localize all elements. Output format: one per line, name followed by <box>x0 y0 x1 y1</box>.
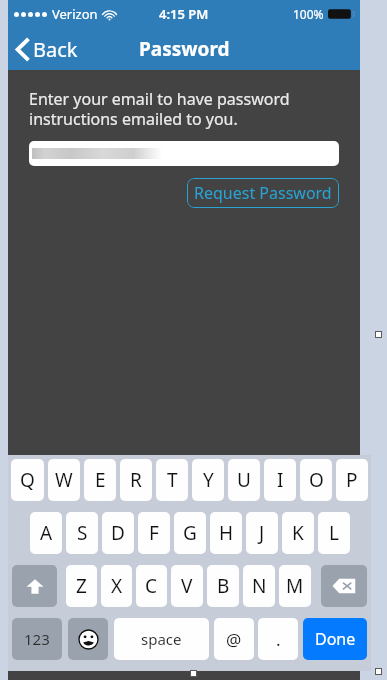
staticText: O <box>309 467 324 493</box>
button[interactable]: F <box>138 512 170 554</box>
staticText: Done <box>315 628 356 650</box>
button[interactable]: Q <box>11 459 44 501</box>
button[interactable]: G <box>174 512 206 554</box>
button[interactable]: U <box>228 459 260 501</box>
staticText: Enter your email to have password instru… <box>29 88 290 129</box>
staticText: W <box>55 467 73 493</box>
staticText: I <box>277 467 284 493</box>
button[interactable]: Y <box>192 459 224 501</box>
button[interactable]: H <box>210 512 242 554</box>
staticText: space <box>141 629 182 649</box>
staticText: N <box>252 573 267 599</box>
button[interactable] <box>29 141 339 166</box>
staticText: E <box>95 467 106 493</box>
button[interactable]: . <box>258 618 298 660</box>
staticText: 4:15 PM <box>159 5 209 23</box>
button[interactable]: J <box>246 512 278 554</box>
button[interactable]: @ <box>214 618 254 660</box>
staticText: Z <box>76 573 87 599</box>
button[interactable]: B <box>207 565 239 607</box>
staticText: C <box>145 573 158 599</box>
staticText: D <box>111 520 125 546</box>
staticText: P <box>346 467 358 493</box>
button[interactable]: Backspace <box>321 565 367 607</box>
button[interactable]: T <box>156 459 188 501</box>
staticText: Y <box>203 467 214 493</box>
button[interactable]: Shift <box>12 565 57 607</box>
button[interactable]: R <box>120 459 152 501</box>
staticText: @ <box>226 628 242 651</box>
button[interactable]: Done <box>303 618 367 660</box>
staticText: Q <box>20 467 35 493</box>
button[interactable]: L <box>318 512 350 554</box>
staticText: T <box>167 467 178 493</box>
button[interactable]: W <box>48 459 80 501</box>
button[interactable]: space <box>114 618 209 660</box>
staticText: 123 <box>24 629 50 649</box>
staticText: Password <box>139 36 230 62</box>
staticText: J <box>259 520 265 546</box>
staticText: 100% <box>293 6 324 22</box>
button[interactable]: Back <box>8 32 88 67</box>
staticText: U <box>237 467 251 493</box>
staticText: X <box>111 573 123 599</box>
staticText: H <box>219 520 234 546</box>
button[interactable]: Z <box>66 565 97 607</box>
staticText: M <box>286 573 304 599</box>
button[interactable]: M <box>279 565 311 607</box>
button[interactable]: A <box>30 512 62 554</box>
staticText: S <box>77 520 88 546</box>
staticText: B <box>217 573 230 599</box>
button[interactable]: S <box>66 512 98 554</box>
staticText: R <box>130 467 142 493</box>
button[interactable]: Request Password <box>187 178 339 208</box>
button[interactable]: Emoji <box>68 618 108 660</box>
staticText: . <box>276 628 281 651</box>
staticText: Request Password <box>194 182 332 204</box>
button[interactable]: E <box>84 459 116 501</box>
staticText: L <box>329 520 339 546</box>
button[interactable]: X <box>101 565 132 607</box>
button[interactable]: V <box>171 565 203 607</box>
button[interactable]: O <box>300 459 332 501</box>
staticText: Back <box>33 36 78 63</box>
button[interactable]: C <box>136 565 167 607</box>
staticText: G <box>183 520 197 546</box>
button[interactable]: P <box>336 459 368 501</box>
button[interactable]: N <box>243 565 275 607</box>
button[interactable]: I <box>264 459 296 501</box>
staticText: F <box>149 520 159 546</box>
staticText: V <box>181 573 193 599</box>
staticText: Verizon <box>52 5 98 23</box>
button[interactable]: K <box>282 512 314 554</box>
button[interactable]: D <box>102 512 134 554</box>
button[interactable]: 123 <box>12 618 62 660</box>
staticText: K <box>292 520 304 546</box>
staticText: A <box>40 520 53 546</box>
